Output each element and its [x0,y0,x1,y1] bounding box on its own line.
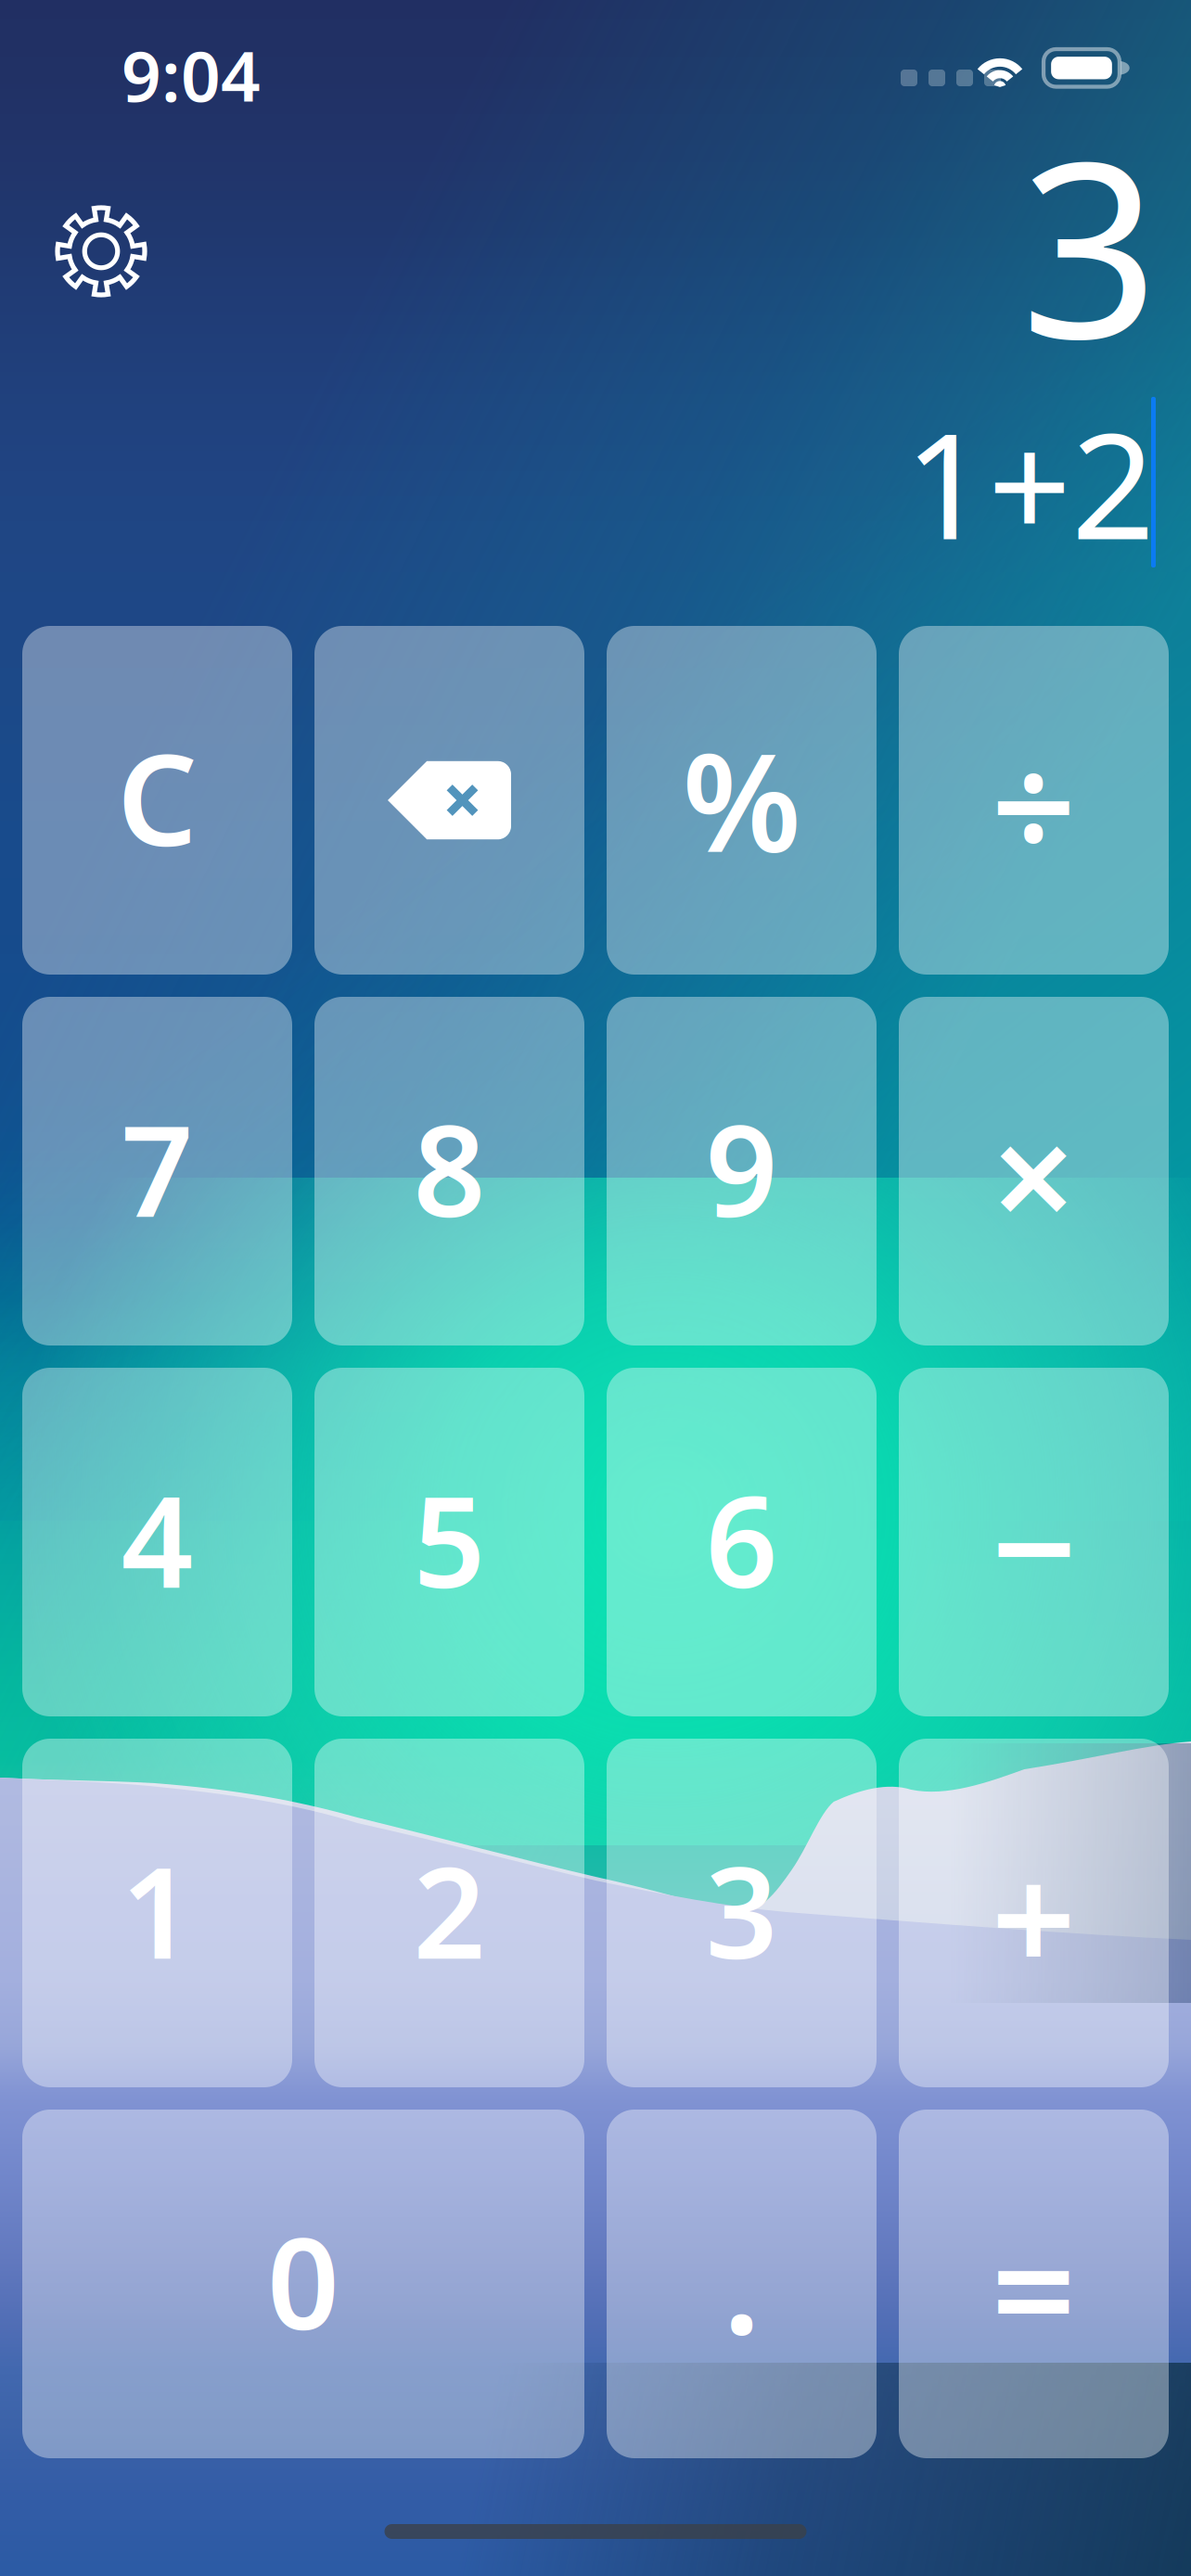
staticText: = [991,2188,1076,2385]
button[interactable]: = [899,2110,1169,2458]
staticText: + [991,1817,1076,2014]
staticText: 1 [121,1826,193,1993]
staticText: 7 [121,1084,193,1252]
button[interactable]: % [607,626,877,975]
staticText: % [682,709,801,890]
button[interactable]: Settings [32,182,171,321]
button[interactable]: 8 [314,997,584,1345]
button[interactable]: + [899,1739,1169,2087]
button[interactable]: − [899,1368,1169,1716]
staticText: ÷ [991,705,1076,902]
staticText: − [991,1446,1076,1643]
button[interactable]: . [607,2110,877,2458]
staticText: 1+2 [904,386,1155,579]
button[interactable]: 4 [22,1368,292,1716]
staticText: 9 [705,1084,778,1252]
button[interactable]: Delete [314,626,584,975]
staticText: 6 [705,1455,778,1623]
button[interactable]: 6 [607,1368,877,1716]
button[interactable]: ÷ [899,626,1169,975]
staticText: × [991,1075,1076,1273]
staticText: 3 [705,1826,778,1993]
staticText: 8 [413,1084,486,1252]
staticText: 5 [413,1455,486,1623]
staticText: 2 [413,1826,486,1993]
button[interactable]: 3 [607,1739,877,2087]
button[interactable]: 7 [22,997,292,1345]
staticText: C [117,713,198,881]
staticText: . [723,2188,761,2372]
staticText: 3 [1020,83,1159,404]
staticText: 9:04 [122,29,261,121]
button[interactable]: 5 [314,1368,584,1716]
staticText: 4 [121,1455,193,1623]
button[interactable]: × [899,997,1169,1345]
button[interactable]: C [22,626,292,975]
button[interactable]: 1 [22,1739,292,2087]
button[interactable]: 2 [314,1739,584,2087]
staticText: 0 [267,2197,339,2364]
button[interactable]: 0 [22,2110,584,2458]
button[interactable]: 9 [607,997,877,1345]
